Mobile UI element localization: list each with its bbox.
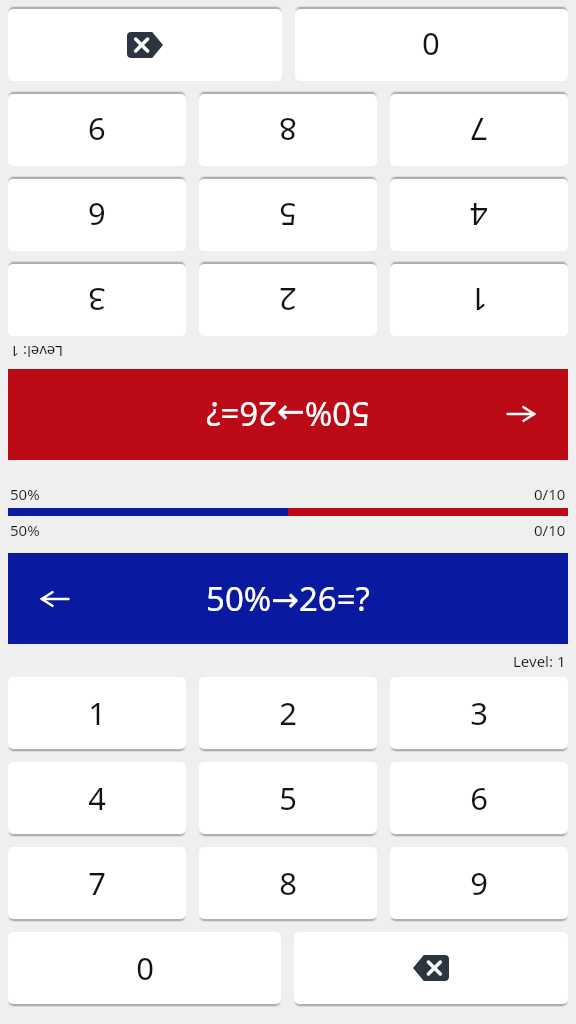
staticText: 3 [470,692,488,734]
staticText: 0 [136,947,154,989]
staticText: 2 [279,692,297,734]
staticText: 9 [470,862,488,904]
staticText: 5 [279,194,297,236]
staticText: 6 [470,777,488,819]
staticText: 0/10 [534,520,566,540]
button[interactable]: 7 [8,847,186,919]
button[interactable]: Backspace [294,932,568,1004]
button[interactable]: 2 [199,264,377,336]
button[interactable]: 2 [199,677,377,749]
button[interactable]: 6 [8,179,186,251]
button[interactable]: 0 [295,9,568,81]
button[interactable]: 5 [199,179,377,251]
button[interactable]: 4 [8,762,186,834]
button[interactable]: 7 [390,94,568,166]
staticText: 6 [88,194,106,236]
button[interactable]: 0 [8,932,281,1004]
staticText: 4 [88,777,106,819]
staticText: 7 [88,862,106,904]
staticText: 1 [88,692,106,734]
button[interactable]: 9 [8,94,186,166]
button[interactable]: Backspace [8,9,282,81]
button[interactable]: 3 [390,677,568,749]
button[interactable]: 50%→26=? [8,553,568,644]
button[interactable]: 9 [390,847,568,919]
button[interactable]: 5 [199,762,377,834]
staticText: 1 [470,279,488,321]
staticText: 8 [279,109,297,151]
staticText: 7 [470,109,488,151]
button[interactable]: 1 [8,677,186,749]
staticText: 50%→26=? [206,392,370,437]
button[interactable]: 1 [390,264,568,336]
staticText: 2 [279,279,297,321]
staticText: 50% [10,484,40,504]
staticText: 8 [279,862,297,904]
staticText: 0 [422,24,440,66]
staticText: 4 [470,194,488,236]
staticText: 3 [88,279,106,321]
button[interactable]: 8 [199,94,377,166]
staticText: 0/10 [534,484,566,504]
button[interactable]: 3 [8,264,186,336]
staticText: Level: 1 [10,342,63,362]
staticText: Level: 1 [513,651,566,671]
button[interactable]: 50%→26=? [8,369,568,460]
staticText: 5 [279,777,297,819]
staticText: 9 [88,109,106,151]
staticText: 50%→26=? [206,576,370,621]
button[interactable]: 6 [390,762,568,834]
staticText: 50% [10,520,40,540]
button[interactable]: 4 [390,179,568,251]
button[interactable]: 8 [199,847,377,919]
